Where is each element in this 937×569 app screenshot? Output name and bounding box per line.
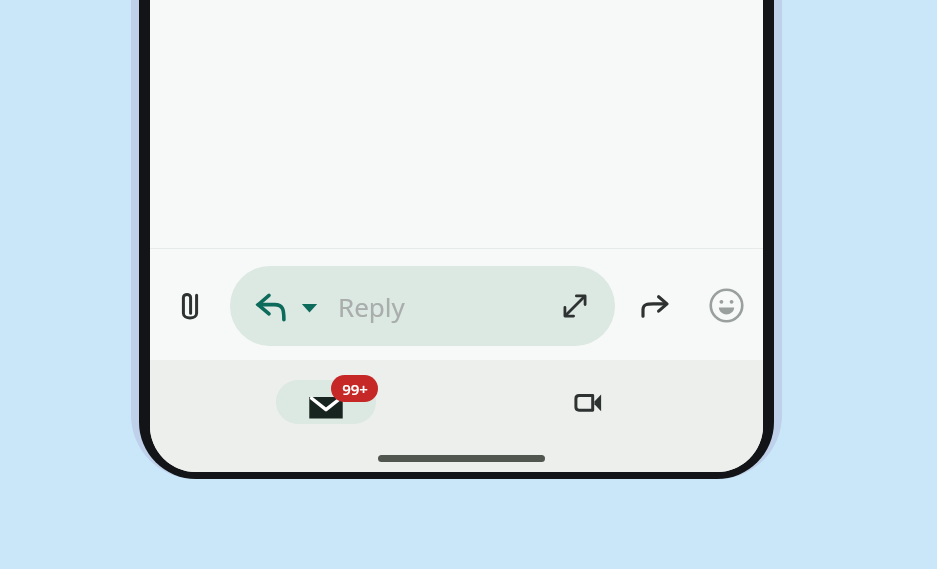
button[interactable]: Reply (230, 266, 615, 346)
button[interactable]: Mail, 99 plus unread (276, 380, 376, 424)
button[interactable]: Insert emoji (698, 277, 754, 333)
staticText: Reply (338, 289, 405, 324)
staticText: 99+ (342, 379, 368, 399)
button[interactable]: Video call (558, 380, 618, 424)
button[interactable]: Expand (553, 284, 597, 328)
button[interactable]: Forward (627, 278, 683, 334)
button[interactable]: Attach file (162, 278, 218, 334)
